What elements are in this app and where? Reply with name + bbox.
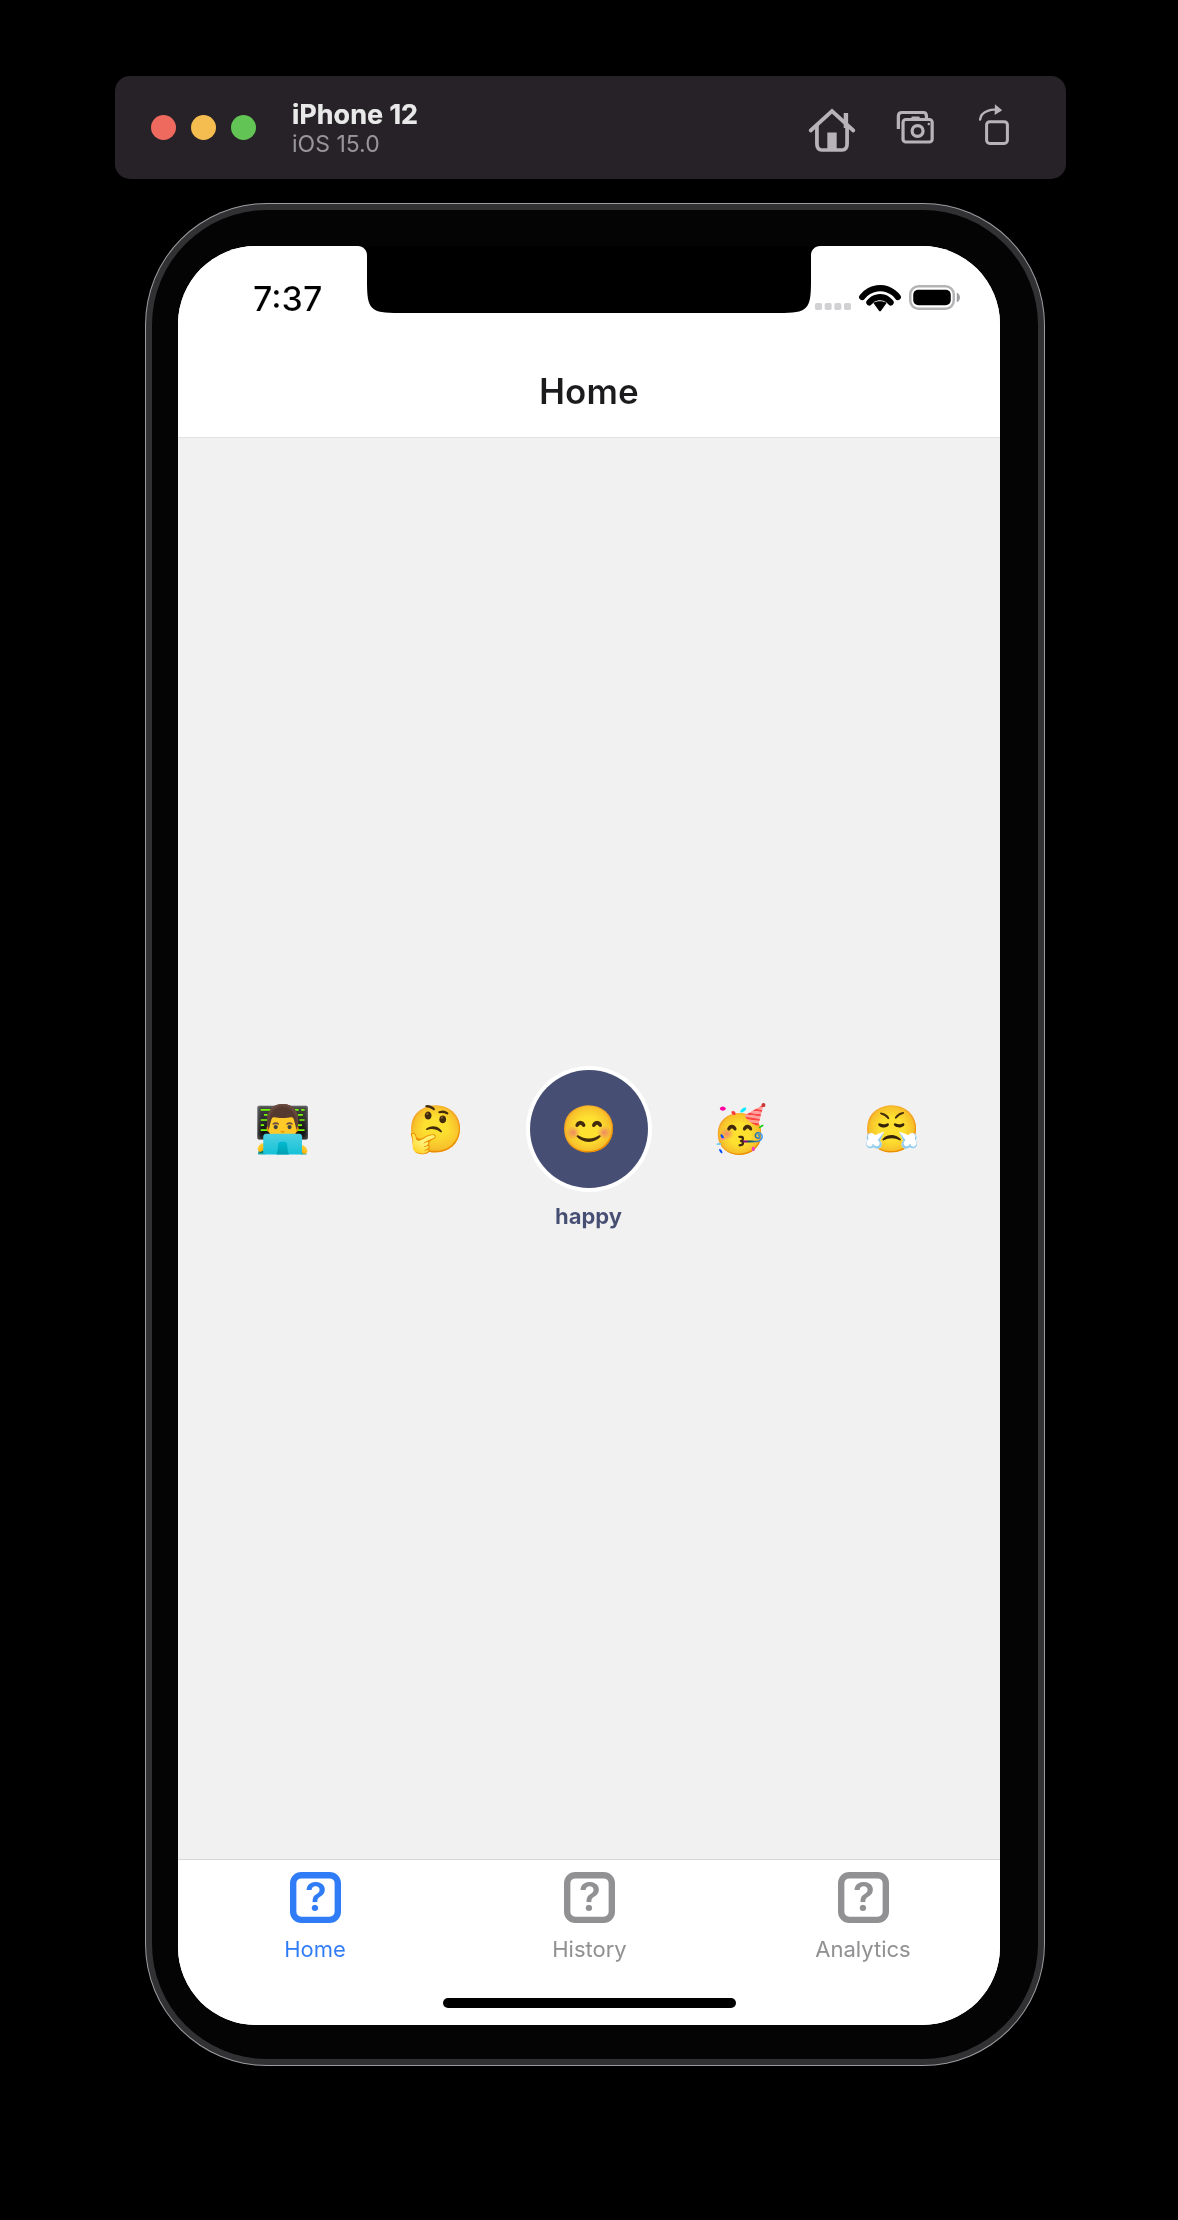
staticText: Home <box>539 370 639 412</box>
button[interactable]: Screenshot <box>889 103 941 153</box>
button[interactable]: thoughtful <box>396 1089 476 1169</box>
staticText: ? <box>305 1872 327 1920</box>
button[interactable]: ? <box>452 1860 726 1980</box>
button[interactable]: ? <box>178 1860 452 1980</box>
staticText: 👨‍💻 <box>254 1102 312 1156</box>
staticText: Analytics <box>815 1936 911 1963</box>
button[interactable]: happy <box>530 1070 648 1188</box>
staticText: 7:37 <box>253 278 323 319</box>
staticText: iPhone 12 <box>292 98 419 131</box>
staticText: iOS 15.0 <box>292 130 380 158</box>
button[interactable] <box>231 115 256 140</box>
staticText: happy <box>555 1203 623 1230</box>
button[interactable]: excited <box>700 1089 780 1169</box>
button[interactable]: Rotate <box>971 100 1023 153</box>
staticText: ? <box>853 1872 875 1920</box>
staticText: 😤 <box>863 1102 921 1156</box>
staticText: 🥳 <box>711 1102 769 1156</box>
button[interactable]: productive <box>243 1089 323 1169</box>
staticText: 😊 <box>560 1102 618 1156</box>
button[interactable]: angry <box>852 1089 932 1169</box>
button[interactable] <box>151 115 176 140</box>
staticText: Home <box>284 1936 346 1963</box>
staticText: History <box>552 1936 627 1963</box>
button[interactable] <box>191 115 216 140</box>
staticText: ? <box>579 1872 601 1920</box>
button[interactable]: Home <box>806 103 858 153</box>
staticText: 🤔 <box>407 1102 465 1156</box>
button[interactable]: ? <box>726 1860 1000 1980</box>
